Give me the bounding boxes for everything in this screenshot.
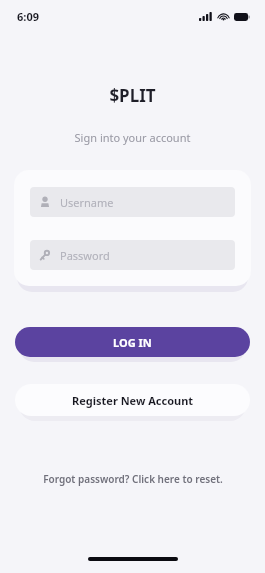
other: Password xyxy=(39,249,51,261)
staticText: Sign into your account xyxy=(0,130,265,145)
staticText: 6:09 xyxy=(17,9,39,24)
staticText: $PLIT xyxy=(0,84,265,107)
staticText: Username xyxy=(60,195,114,210)
staticText: Register New Account xyxy=(72,393,194,408)
button[interactable]: Username xyxy=(30,187,235,217)
button[interactable]: LOG IN xyxy=(15,327,250,357)
button[interactable]: Forgot password? Click here to reset. xyxy=(0,472,265,486)
staticText: LOG IN xyxy=(113,335,152,350)
button[interactable]: Password xyxy=(30,240,235,270)
staticText: Password xyxy=(60,248,110,263)
staticText: Forgot password? Click here to reset. xyxy=(43,472,223,486)
button[interactable]: Register New Account xyxy=(15,384,250,416)
other: Username xyxy=(39,196,51,208)
